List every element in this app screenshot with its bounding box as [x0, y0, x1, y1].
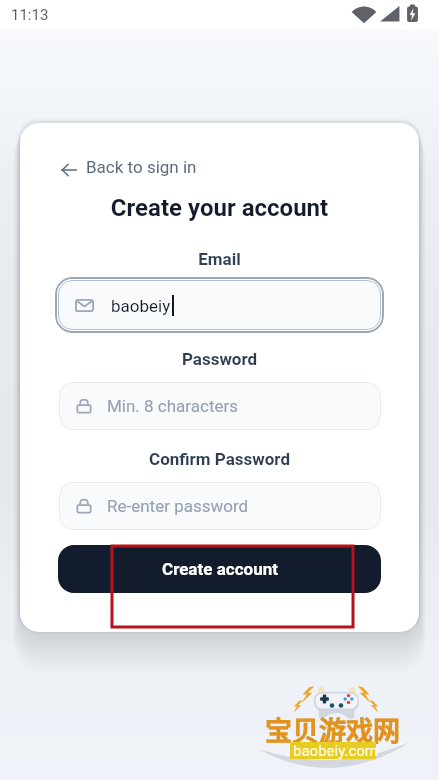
button[interactable]: Create account: [58, 545, 381, 593]
staticText: baobeiy.com: [293, 742, 378, 760]
button[interactable]: baobeiy: [58, 280, 381, 330]
staticText: Create account: [162, 559, 278, 579]
button[interactable]: Re-enter password: [59, 482, 381, 530]
staticText: Create your account: [20, 194, 419, 222]
staticText: baobeiy: [111, 296, 171, 316]
button[interactable]: Back to sign in: [61, 157, 197, 177]
staticText: 11:13: [11, 6, 49, 24]
staticText: Confirm Password: [20, 449, 419, 469]
staticText: Password: [20, 349, 419, 369]
button[interactable]: Min. 8 characters: [59, 382, 381, 430]
staticText: Min. 8 characters: [107, 396, 239, 416]
staticText: Re-enter password: [107, 496, 249, 516]
staticText: 宝贝游戏网: [265, 710, 400, 749]
staticText: Back to sign in: [86, 157, 197, 177]
staticText: Email: [20, 249, 419, 269]
